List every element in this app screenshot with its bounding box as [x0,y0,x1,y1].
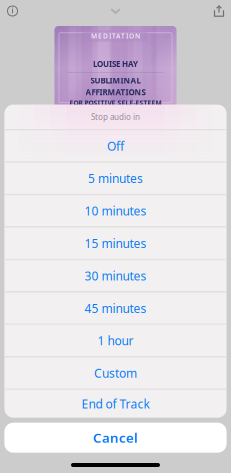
button[interactable]: 30 minutes [4,260,227,291]
staticText: Cancel [93,429,138,446]
staticText: 15 minutes [84,235,146,251]
staticText: End of Track [81,396,149,412]
staticText: SUBLIMINAL [90,75,140,86]
staticText: 5 minutes [88,170,143,186]
button[interactable]: Custom [4,358,227,388]
staticText: Custom [94,365,137,381]
staticText: Stop audio in [91,111,140,122]
staticText: 1 hour [97,333,133,349]
staticText: LOUISE HAY [93,58,138,69]
staticText: FOR POSITIVE SELF-ESTEEM [69,98,161,107]
staticText: 30 minutes [84,268,146,284]
button[interactable]: 45 minutes [4,293,227,324]
staticText: AFFIRMATIONS [85,87,145,97]
button[interactable]: 10 minutes [4,195,227,226]
staticText: 45 minutes [84,300,146,316]
button[interactable]: Off [4,130,227,161]
staticText: MEDITATION [91,31,140,40]
button[interactable]: Collapse player [110,8,121,14]
button[interactable]: Share [213,5,224,17]
button[interactable]: 5 minutes [4,163,227,194]
button[interactable]: 1 hour [4,325,227,356]
button[interactable]: Info [5,4,19,18]
button[interactable]: End of Track [4,390,227,418]
staticText: 10 minutes [84,203,146,219]
button[interactable]: Cancel [4,423,227,453]
button[interactable]: 15 minutes [4,228,227,259]
staticText: Off [107,138,124,154]
